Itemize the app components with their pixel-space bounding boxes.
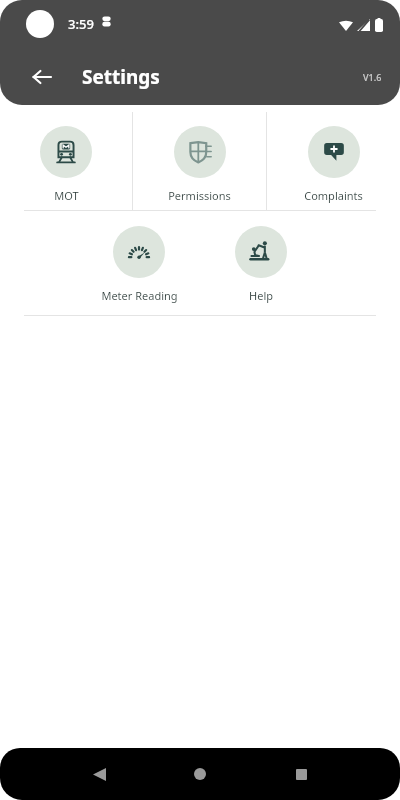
button[interactable]: Permissions (133, 112, 266, 211)
staticText: Help (249, 288, 273, 303)
button[interactable]: Complaints (267, 112, 400, 211)
staticText: Permissions (168, 188, 231, 203)
staticText: Meter Reading (101, 288, 178, 303)
button[interactable]: Meter Reading (78, 212, 200, 316)
button[interactable]: Recent apps (280, 753, 322, 795)
staticText: Settings (82, 64, 160, 90)
staticText: Complaints (304, 188, 363, 203)
button[interactable]: Home (179, 753, 221, 795)
button[interactable]: Back (24, 59, 60, 95)
button[interactable]: Help (200, 212, 322, 316)
button[interactable]: MOT (0, 112, 132, 211)
button[interactable]: Back (78, 753, 120, 795)
staticText: 3:59 (68, 15, 94, 33)
staticText: MOT (54, 188, 79, 203)
staticText: V1.6 (363, 71, 382, 83)
